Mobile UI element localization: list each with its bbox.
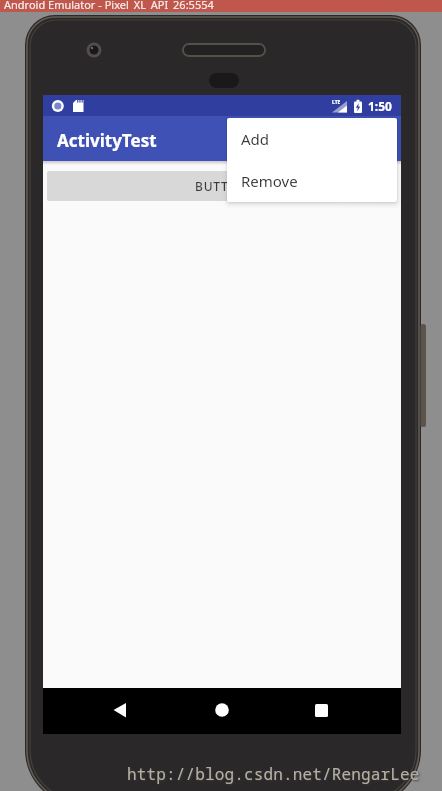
staticText: Android Emulator - Pixel_XL_API_26:5554 (4, 0, 214, 9)
button[interactable] (100, 690, 140, 730)
staticText: Remove (241, 171, 298, 191)
staticText: 1:50 (368, 98, 392, 114)
staticText: LTE (332, 99, 341, 106)
staticText: BUTTON (195, 178, 249, 194)
staticText: http://blog.csdn.net/RengarLee (127, 763, 420, 785)
button[interactable]: Remove (227, 160, 397, 202)
button[interactable] (202, 690, 242, 730)
staticText: ActivityTest (57, 129, 157, 152)
button[interactable] (301, 690, 341, 730)
button[interactable]: Add (227, 118, 397, 160)
staticText: Add (241, 129, 270, 149)
button[interactable]: BUTTON (47, 171, 397, 201)
